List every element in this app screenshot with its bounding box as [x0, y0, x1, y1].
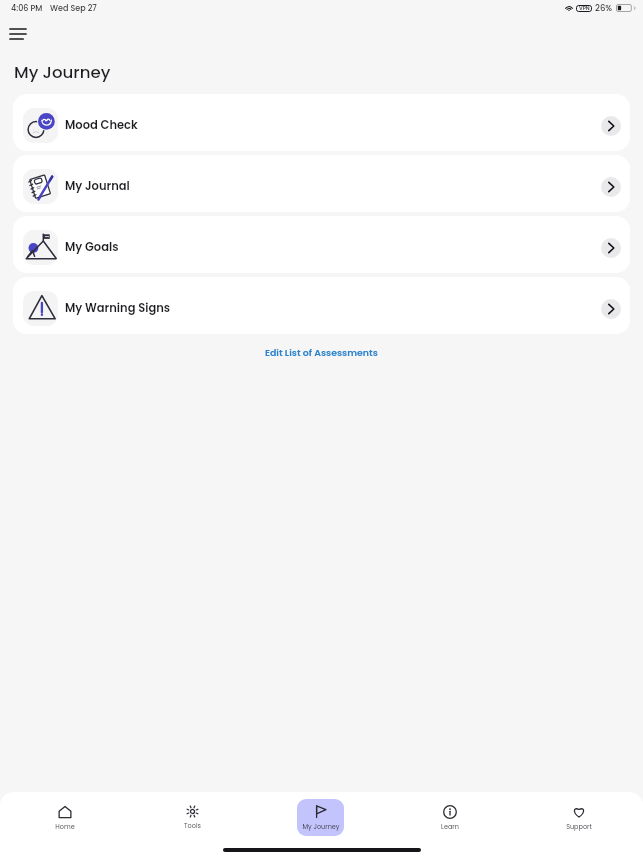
staticText: My Journal — [65, 178, 130, 194]
staticText: My Journey — [14, 61, 111, 84]
button[interactable]: Tools — [169, 799, 216, 836]
staticText: My Goals — [65, 239, 119, 255]
staticText: Tools — [184, 821, 201, 830]
button[interactable]: Edit List of Assessments — [255, 343, 388, 362]
staticText: Home — [55, 822, 75, 831]
staticText: My Journey — [302, 822, 340, 831]
staticText: Support — [566, 822, 592, 831]
staticText: VPN — [579, 5, 590, 12]
staticText: Wed Sep 27 — [50, 3, 97, 14]
button[interactable]: My Journey — [297, 799, 344, 836]
staticText: My Warning Signs — [65, 300, 171, 316]
button[interactable]: Learn — [426, 799, 473, 836]
staticText: 4:06 PM — [11, 3, 43, 14]
staticText: Learn — [441, 822, 459, 831]
button[interactable]: My Journal — [13, 155, 630, 212]
button[interactable]: Support — [555, 799, 602, 836]
button[interactable]: My Warning Signs — [13, 277, 630, 334]
staticText: Mood Check — [65, 117, 138, 133]
button[interactable]: Menu — [6, 22, 30, 46]
button[interactable]: Home — [41, 799, 88, 836]
button[interactable]: Mood Check — [13, 94, 630, 151]
button[interactable]: My Goals — [13, 216, 630, 273]
staticText: 26% — [595, 2, 613, 14]
